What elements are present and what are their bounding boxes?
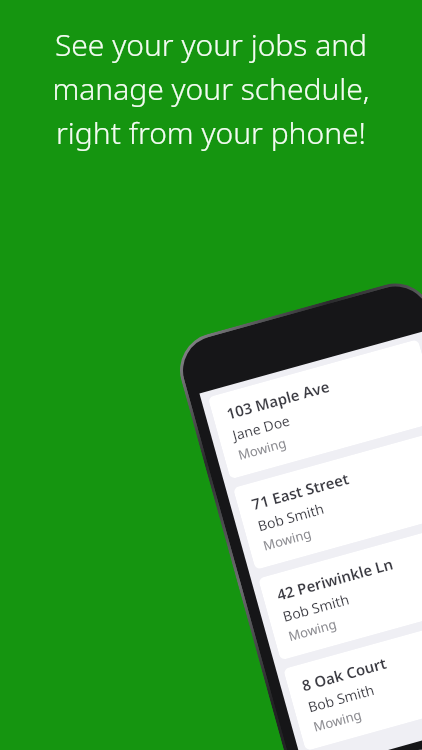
staticText: 103 Maple Ave: [224, 376, 332, 423]
button[interactable]: 8 Oak Court: [283, 611, 422, 750]
button[interactable]: 71 East Street: [233, 430, 422, 570]
staticText: Mowing: [261, 524, 313, 554]
staticText: Bob Smith: [306, 680, 376, 716]
staticText: right from your phone!: [22, 112, 400, 153]
button[interactable]: 42 Periwinkle Ln: [258, 520, 422, 660]
button[interactable]: Home: [396, 744, 422, 750]
staticText: 8 Oak Court: [300, 653, 389, 695]
staticText: manage your schedule,: [22, 68, 400, 109]
staticText: Mowing: [311, 705, 363, 736]
staticText: Mowing: [236, 433, 288, 464]
staticText: Bob Smith: [281, 589, 351, 626]
button[interactable]: 103 Maple Ave: [208, 339, 422, 479]
staticText: Bob Smith: [255, 499, 326, 535]
staticText: 71 East Street: [249, 468, 351, 514]
staticText: Jane Doe: [230, 411, 292, 445]
staticText: Mowing: [286, 615, 338, 645]
staticText: 42 Periwinkle Ln: [274, 553, 395, 605]
staticText: See your your jobs and: [22, 24, 400, 65]
